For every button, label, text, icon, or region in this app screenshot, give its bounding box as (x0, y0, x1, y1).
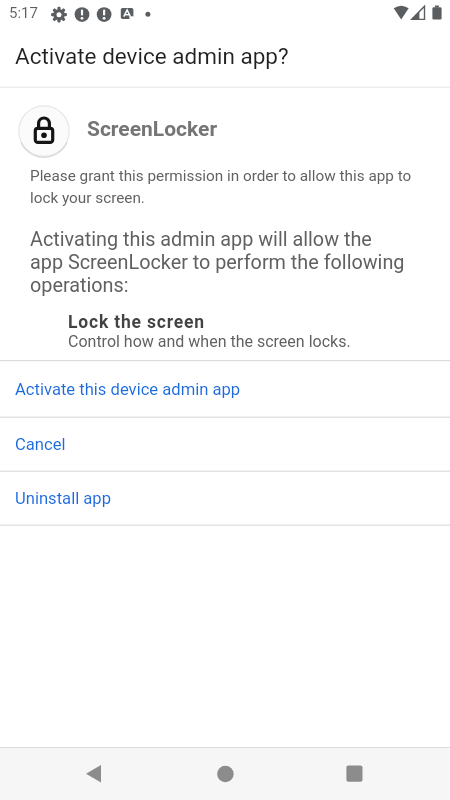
button[interactable] (201, 750, 249, 798)
staticText: Activating this admin app will allow the… (30, 228, 405, 297)
button[interactable] (330, 750, 378, 798)
staticText: 5:17 (9, 4, 38, 22)
staticText: ScreenLocker (87, 117, 218, 142)
staticText: Cancel (15, 435, 66, 454)
button[interactable]: Cancel (0, 417, 450, 471)
staticText: Control how and when the screen locks. (68, 332, 351, 351)
button[interactable]: Activate this device admin app (0, 361, 450, 417)
staticText: Activate this device admin app (15, 380, 241, 399)
button[interactable]: Uninstall app (0, 471, 450, 525)
staticText: Lock the screen (68, 312, 205, 333)
staticText: Activate device admin app? (15, 43, 289, 69)
staticText: Uninstall app (15, 489, 111, 508)
staticText: Please grant this permission in order to… (30, 167, 412, 207)
button[interactable] (70, 750, 118, 798)
